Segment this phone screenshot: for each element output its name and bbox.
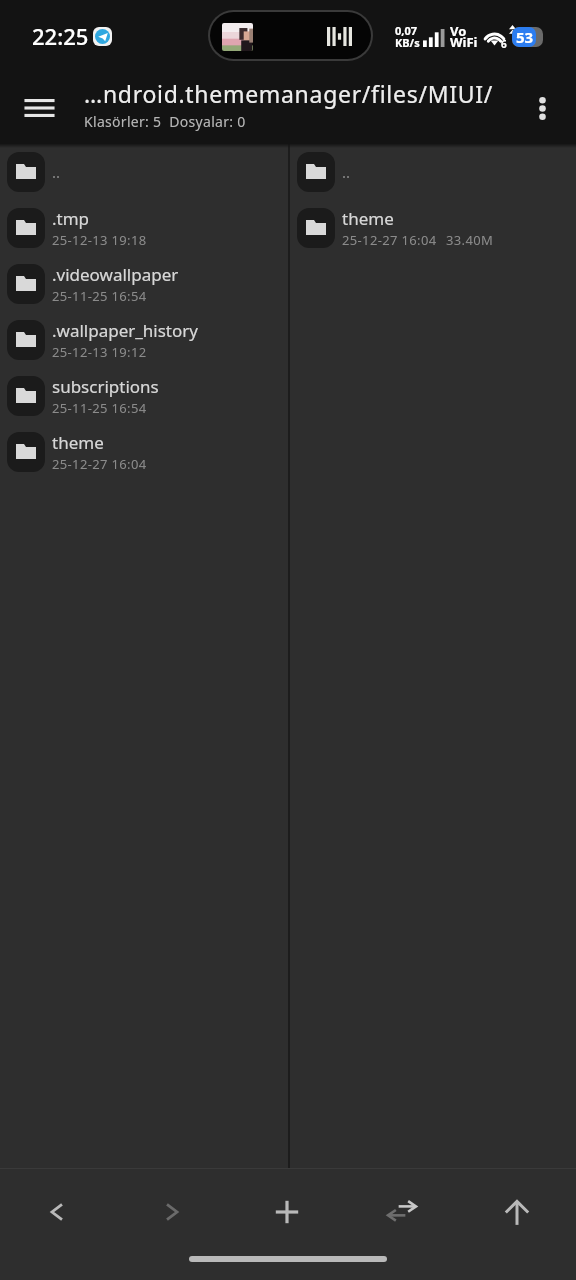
staticText: 53: [516, 27, 534, 47]
button[interactable]: .wallpaper_history: [0, 312, 288, 368]
staticText: ..: [342, 162, 351, 182]
button[interactable]: Up: [484, 1179, 550, 1245]
staticText: .videowallpaper: [52, 263, 179, 286]
button[interactable]: Move: [369, 1179, 435, 1245]
staticText: 25-12-27 16:04: [52, 455, 147, 473]
staticText: KB/s: [395, 35, 420, 50]
staticText: theme: [342, 207, 394, 230]
staticText: 0,07: [395, 23, 418, 38]
staticText: Vo: [450, 22, 467, 40]
staticText: …ndroid.thememanager/files/MIUI/: [84, 78, 493, 109]
staticText: 6: [501, 37, 507, 51]
button[interactable]: theme: [290, 200, 576, 256]
staticText: 25-12-13 19:18: [52, 231, 147, 249]
staticText: 25-11-25 16:54: [52, 399, 147, 417]
button[interactable]: subscriptions: [0, 368, 288, 424]
button[interactable]: ..: [0, 144, 288, 200]
button[interactable]: ..: [290, 144, 576, 200]
button[interactable]: .videowallpaper: [0, 256, 288, 312]
staticText: 33.40M: [446, 231, 494, 249]
button[interactable]: Back: [24, 1179, 90, 1245]
staticText: Klasörler: 5 Dosyalar: 0: [84, 112, 246, 131]
staticText: theme: [52, 431, 104, 454]
staticText: 25-12-27 16:04: [342, 231, 437, 249]
staticText: .wallpaper_history: [52, 319, 198, 342]
button[interactable]: Forward: [139, 1179, 205, 1245]
staticText: 25-11-25 16:54: [52, 287, 147, 305]
button[interactable]: .tmp: [0, 200, 288, 256]
staticText: ..: [52, 162, 61, 182]
staticText: 25-12-13 19:12: [52, 343, 147, 361]
staticText: WiFi: [450, 33, 478, 51]
button[interactable]: More options: [514, 82, 570, 134]
staticText: subscriptions: [52, 375, 159, 398]
staticText: .tmp: [52, 207, 90, 230]
button[interactable]: Menu: [4, 84, 74, 132]
button[interactable]: theme: [0, 424, 288, 480]
staticText: 22:25: [32, 21, 89, 51]
button[interactable]: New folder: [254, 1179, 320, 1245]
